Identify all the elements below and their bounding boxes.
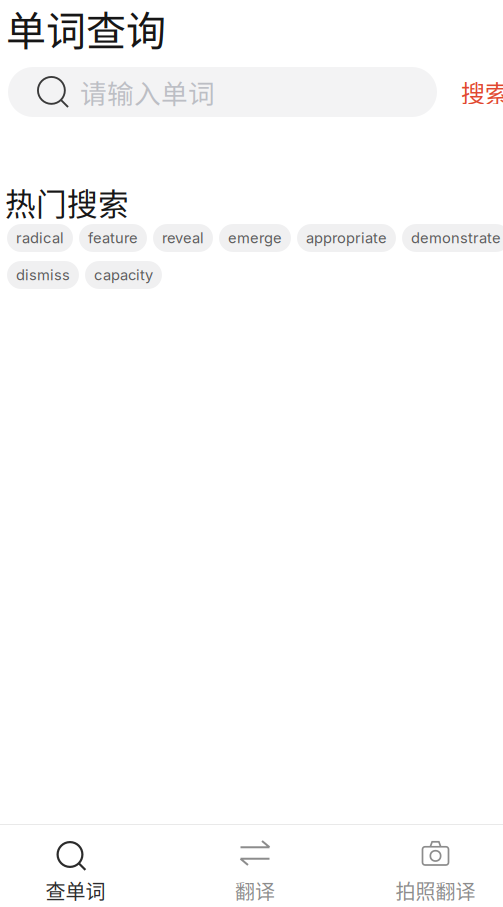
button[interactable]: reveal: [153, 224, 213, 252]
staticText: emerge: [228, 229, 282, 247]
staticText: 拍照翻译: [395, 876, 475, 905]
staticText: 单词查询: [6, 0, 166, 57]
staticText: feature: [88, 229, 138, 247]
button[interactable]: demonstrate: [402, 224, 503, 252]
button[interactable]: 拍照翻译: [359, 825, 503, 907]
staticText: 请输入单词: [80, 73, 215, 111]
staticText: dismiss: [16, 266, 70, 284]
button[interactable]: emerge: [219, 224, 291, 252]
staticText: 搜索: [461, 75, 503, 109]
button[interactable]: dismiss: [7, 261, 79, 289]
button[interactable]: capacity: [85, 261, 162, 289]
staticText: 热门搜索: [5, 180, 129, 224]
button[interactable]: radical: [7, 224, 73, 252]
staticText: reveal: [162, 229, 204, 247]
staticText: demonstrate: [411, 229, 501, 247]
button[interactable]: feature: [79, 224, 147, 252]
staticText: capacity: [94, 266, 153, 284]
staticText: 查单词: [45, 876, 105, 905]
staticText: radical: [16, 229, 64, 247]
button[interactable]: 查单词: [0, 825, 151, 907]
staticText: 翻译: [235, 876, 275, 905]
staticText: appropriate: [306, 229, 387, 247]
button[interactable]: 搜索: [437, 67, 503, 117]
button[interactable]: 翻译: [151, 825, 359, 907]
button[interactable]: appropriate: [297, 224, 396, 252]
